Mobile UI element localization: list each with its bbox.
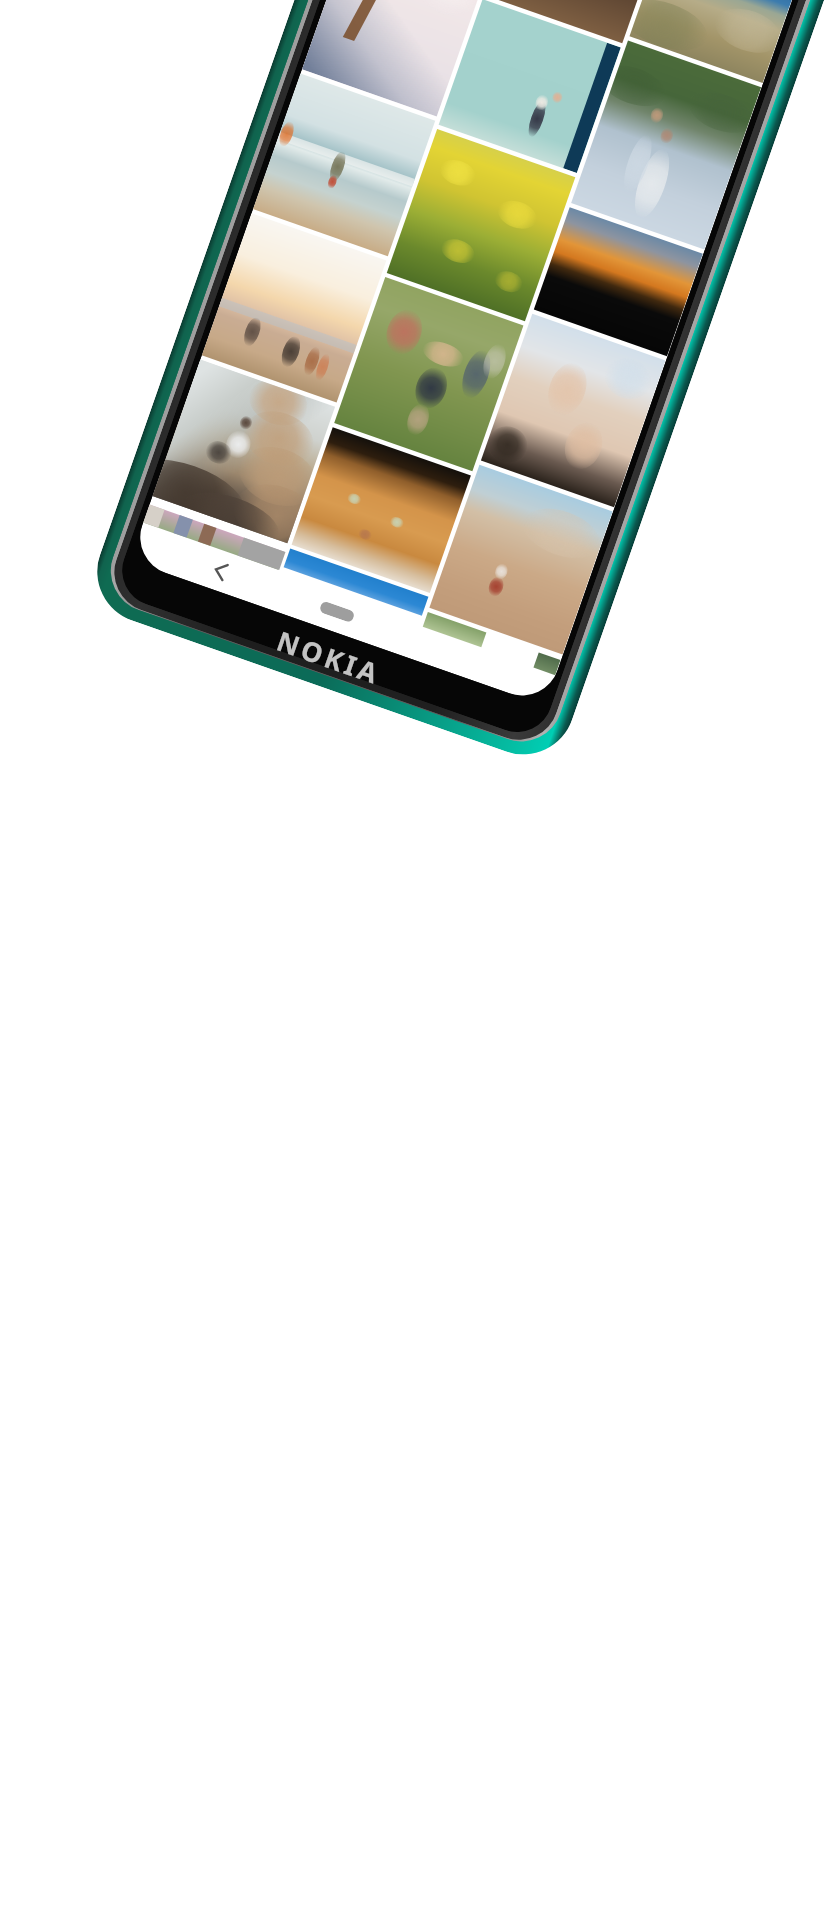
staticText: NOKIA	[272, 622, 386, 692]
button[interactable]: Home	[312, 589, 361, 634]
button[interactable]: Back	[197, 549, 243, 593]
